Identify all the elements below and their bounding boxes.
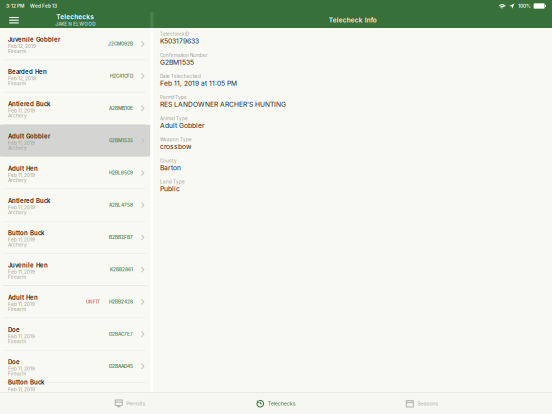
staticText: Firearm bbox=[8, 339, 26, 344]
button[interactable]: Antlered Buck bbox=[0, 92, 150, 124]
button[interactable]: Adult Hen bbox=[0, 286, 150, 318]
staticText: Juvenile Hen bbox=[8, 262, 48, 269]
staticText: Barton bbox=[160, 164, 181, 172]
button[interactable]: Juvenile Gobbler bbox=[0, 28, 150, 60]
button[interactable]: Telechecks bbox=[221, 393, 331, 414]
staticText: Firearm bbox=[8, 307, 26, 312]
staticText: Archery bbox=[8, 210, 27, 215]
staticText: County bbox=[160, 158, 177, 163]
staticText: Juvenile Gobbler bbox=[8, 36, 60, 43]
button[interactable]: Permits bbox=[75, 393, 185, 414]
staticText: Telechecks bbox=[268, 400, 296, 407]
staticText: JAKE N ELWOOD bbox=[55, 21, 95, 27]
staticText: Feb 11, 2019 bbox=[8, 334, 35, 339]
staticText: Feb 11, 2019 bbox=[8, 270, 35, 275]
staticText: H2BB2428 bbox=[109, 299, 133, 305]
staticText: Date Telechecked bbox=[160, 74, 201, 79]
staticText: Telecheck Info bbox=[329, 16, 377, 24]
staticText: Archery bbox=[8, 178, 27, 183]
staticText: Firearm bbox=[8, 371, 26, 376]
staticText: J2CM092B bbox=[108, 41, 133, 47]
staticText: G2BM1535 bbox=[160, 58, 194, 66]
button[interactable]: Doe bbox=[0, 318, 150, 350]
staticText: Doe bbox=[8, 326, 20, 333]
staticText: Permit Type bbox=[160, 95, 187, 100]
staticText: Antlered Buck bbox=[8, 100, 50, 108]
staticText: Feb 11, 2019 bbox=[8, 173, 35, 178]
staticText: crossbow bbox=[160, 143, 191, 151]
staticText: Animal Type bbox=[160, 116, 188, 121]
staticText: Button Buck bbox=[8, 229, 44, 237]
button[interactable]: Menu bbox=[0, 12, 28, 28]
staticText: Archery bbox=[8, 113, 27, 118]
staticText: D2BAC7E7 bbox=[109, 331, 133, 337]
staticText: Bearded Hen bbox=[8, 68, 47, 75]
button[interactable]: Adult Gobbler bbox=[0, 125, 150, 157]
button[interactable]: Adult Hen bbox=[0, 157, 150, 189]
staticText: Archery bbox=[8, 242, 27, 247]
staticText: A2BMB10E bbox=[109, 106, 133, 111]
staticText: Telechecks bbox=[56, 13, 94, 21]
staticText: K2BB2861 bbox=[110, 267, 133, 272]
staticText: Firearm bbox=[8, 81, 26, 86]
staticText: D2BAAD45 bbox=[109, 364, 133, 369]
staticText: Feb 12, 2019 bbox=[8, 44, 36, 49]
staticText: Telecheck ID bbox=[160, 31, 189, 37]
staticText: Permits bbox=[126, 400, 145, 407]
staticText: 100% bbox=[518, 3, 531, 9]
staticText: H2C41CFD bbox=[110, 73, 133, 79]
staticText: Adult Hen bbox=[8, 165, 38, 172]
staticText: Feb 11, 2019 bbox=[8, 237, 35, 242]
button[interactable]: Button Buck bbox=[0, 383, 150, 393]
staticText: A2BL4758 bbox=[109, 202, 133, 208]
staticText: Feb 11, 2019 at 11:05 PM bbox=[160, 79, 237, 87]
staticText: Feb 11, 2019 bbox=[8, 302, 35, 307]
staticText: Firearm bbox=[8, 274, 26, 280]
staticText: Button Buck bbox=[8, 379, 44, 386]
button[interactable]: Juvenile Hen bbox=[0, 254, 150, 286]
staticText: Confirmation Number bbox=[160, 52, 208, 58]
staticText: Adult Gobbler bbox=[160, 121, 205, 130]
staticText: Archery bbox=[8, 145, 27, 151]
staticText: Public bbox=[160, 185, 180, 193]
staticText: Adult Hen bbox=[8, 294, 38, 301]
staticText: B2BB2FB7 bbox=[109, 235, 133, 240]
staticText: Feb 11, 2019 bbox=[8, 141, 35, 146]
button[interactable]: Antlered Buck bbox=[0, 189, 150, 221]
staticText: Weapon Type bbox=[160, 137, 192, 142]
staticText: Feb 12, 2019 bbox=[8, 76, 36, 81]
staticText: Antlered Buck bbox=[8, 197, 50, 204]
button[interactable]: Doe bbox=[0, 350, 150, 382]
button[interactable]: Seasons bbox=[367, 393, 477, 414]
staticText: RES LANDOWNER ARCHER'S HUNTING bbox=[160, 100, 286, 108]
staticText: UNFIT bbox=[86, 299, 100, 305]
staticText: Doe bbox=[8, 358, 20, 366]
staticText: Feb 11, 2019 bbox=[8, 366, 35, 371]
staticText: 3:12 PM bbox=[6, 3, 24, 9]
staticText: Feb 11, 2019 bbox=[8, 108, 35, 113]
staticText: Firearm bbox=[8, 49, 26, 54]
staticText: Adult Gobbler bbox=[8, 133, 50, 140]
staticText: Land Type bbox=[160, 179, 185, 185]
staticText: G2BM1535 bbox=[109, 138, 133, 143]
button[interactable]: Bearded Hen bbox=[0, 60, 150, 92]
staticText: Feb 11, 2019 bbox=[8, 387, 35, 392]
staticText: Wed Feb 13 bbox=[30, 3, 57, 9]
button[interactable]: Button Buck bbox=[0, 221, 150, 253]
staticText: Feb 11, 2019 bbox=[8, 205, 35, 210]
staticText: K503179633 bbox=[160, 37, 199, 45]
staticText: Seasons bbox=[417, 400, 438, 407]
staticText: H2BL65C9 bbox=[109, 170, 133, 176]
